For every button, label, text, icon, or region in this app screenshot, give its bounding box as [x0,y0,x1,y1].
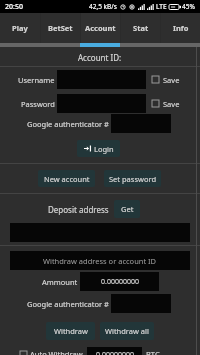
button[interactable]: Stat [121,13,160,43]
button[interactable]: Account [81,13,120,43]
staticText: Google authenticator # [27,299,109,309]
staticText: Google authenticator # [27,119,109,129]
staticText: 20:50 [5,2,23,12]
staticText: Account ID: [78,52,122,63]
button[interactable]: Play [0,13,40,43]
staticText: Withdraw [54,326,88,336]
staticText: LTE [156,2,167,11]
button[interactable]: Withdraw [46,322,95,340]
button[interactable]: Auto Withdraw [20,349,83,355]
staticText: Auto Withdraw [30,349,83,355]
button[interactable]: Withdraw all [100,322,154,340]
staticText: BetSet [48,23,73,33]
staticText: Account [85,23,116,33]
staticText: Password [21,99,55,109]
button[interactable]: Account ID: [0,48,200,66]
staticText: Login [94,144,114,154]
staticText: Play [12,23,28,33]
staticText: Ammount [42,277,78,287]
staticText: 0.00000000 [96,350,134,355]
staticText: Withdraw all [105,326,149,336]
button[interactable]: BetSet [41,13,80,43]
button[interactable]: Info [161,13,200,43]
button[interactable]: New account [38,170,95,187]
button[interactable]: Login [77,140,120,157]
staticText: Set password [109,174,157,184]
button[interactable]: 0.00000000 [80,272,159,291]
staticText: Save [163,99,180,109]
staticText: Deposit address [48,204,109,215]
staticText: 45% [182,2,195,11]
button[interactable]: Withdraw address or account ID [10,251,190,270]
button[interactable]: 0.00000000 [87,347,142,355]
staticText: 42,5 kB/s [89,2,117,11]
staticText: 0.00000000 [101,277,139,287]
staticText: Get [121,204,134,214]
staticText: Withdraw address or account ID [43,256,157,266]
button[interactable]: Save [152,70,180,89]
staticText: BTC [146,349,160,355]
button[interactable]: Set password [104,170,161,187]
staticText: New account [44,174,90,184]
button[interactable]: Get [114,200,140,218]
staticText: Username [18,75,55,85]
staticText: Info [173,23,189,33]
staticText: Stat [133,23,149,33]
staticText: Save [163,75,180,85]
button[interactable]: Save [152,94,180,113]
